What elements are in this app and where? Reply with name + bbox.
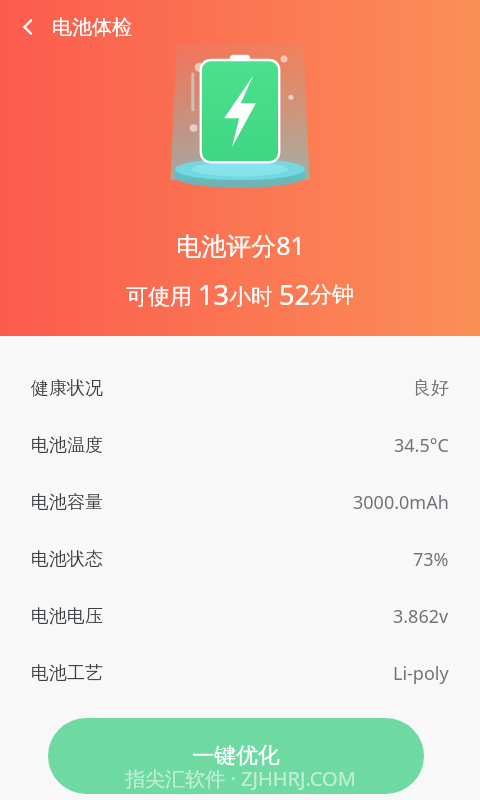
staticText: 指尖汇软件 · ZJHHRJ.COM [125, 765, 356, 792]
staticText: 电池状态 [31, 548, 103, 571]
button[interactable]: 电池温度 [0, 417, 480, 474]
staticText: 52 [279, 276, 310, 313]
staticText: 一键优化 [192, 742, 280, 770]
button[interactable]: Back [8, 7, 48, 47]
button[interactable]: 一键优化 [48, 718, 424, 794]
staticText: 分钟 [310, 281, 354, 309]
button[interactable]: 电池电压 [0, 588, 480, 645]
staticText: 小时 [229, 280, 279, 310]
staticText: 34.5°C [394, 433, 449, 458]
button[interactable]: 电池工艺 [0, 645, 480, 702]
button[interactable]: 健康状况 [0, 360, 480, 417]
staticText: 电池体检 [52, 15, 132, 40]
staticText: 电池工艺 [31, 662, 103, 685]
button[interactable]: 电池容量 [0, 474, 480, 531]
staticText: 73% [413, 547, 449, 572]
staticText: 电池容量 [31, 491, 103, 514]
staticText: 电池评分81 [176, 228, 305, 262]
staticText: 13 [198, 276, 229, 313]
staticText: 电池电压 [31, 605, 103, 628]
staticText: 良好 [413, 377, 449, 400]
button[interactable]: 电池状态 [0, 531, 480, 588]
staticText: Li-poly [393, 661, 449, 686]
staticText: 3.862v [393, 604, 449, 629]
staticText: 健康状况 [31, 377, 103, 400]
staticText: 3000.0mAh [353, 490, 449, 515]
staticText: 可使用 [126, 280, 198, 310]
staticText: 电池温度 [31, 434, 103, 457]
